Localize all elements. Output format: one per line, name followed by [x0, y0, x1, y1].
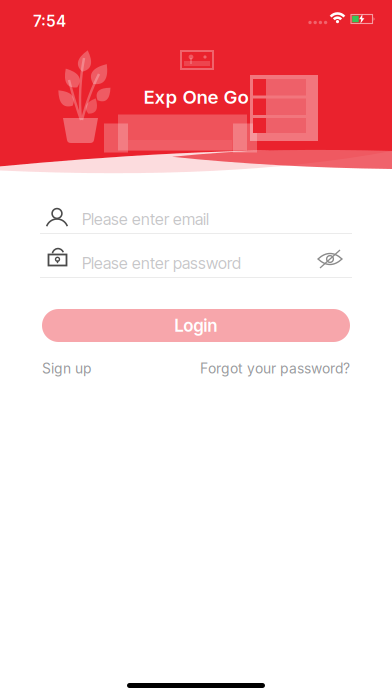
staticText: Please enter password: [82, 253, 241, 273]
button[interactable]: Forgot your password?: [200, 360, 350, 377]
button[interactable]: Login: [42, 309, 350, 342]
button[interactable]: Sign up: [42, 360, 91, 377]
staticText: Exp One Go: [143, 86, 248, 108]
staticText: 7:54: [33, 12, 66, 31]
staticText: Login: [174, 315, 217, 336]
staticText: Sign up: [42, 360, 91, 377]
staticText: Forgot your password?: [200, 360, 350, 377]
button[interactable]: Show password: [315, 249, 347, 275]
staticText: Please enter email: [82, 209, 209, 229]
